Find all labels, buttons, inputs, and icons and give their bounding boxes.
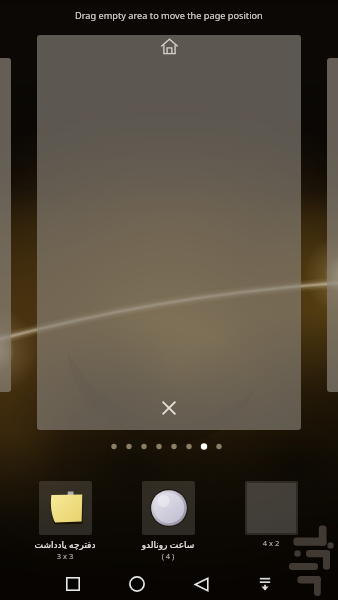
button[interactable]: Back [185, 568, 217, 600]
staticText: Drag empty area to move the page positio… [75, 9, 263, 22]
button[interactable]: Remove page [154, 393, 184, 423]
button[interactable]: Hide keyboard [249, 568, 281, 600]
button[interactable]: 4 x 2 [219, 481, 323, 548]
staticText: 3 x 3 [13, 551, 117, 561]
button[interactable]: Recents [57, 568, 89, 600]
staticText: 4 x 2 [219, 538, 323, 548]
button[interactable]: Set as default home page [37, 35, 301, 430]
staticText: ( 4 ) [116, 551, 220, 561]
staticText: ساعت رونالدو [116, 538, 220, 550]
button[interactable]: ساعت رونالدو [116, 481, 220, 561]
button[interactable]: Home [121, 568, 153, 600]
button[interactable]: دفترچه یادداشت [13, 481, 117, 561]
staticText: دفترچه یادداشت [13, 538, 117, 550]
button[interactable]: Set as default home page [154, 35, 184, 61]
